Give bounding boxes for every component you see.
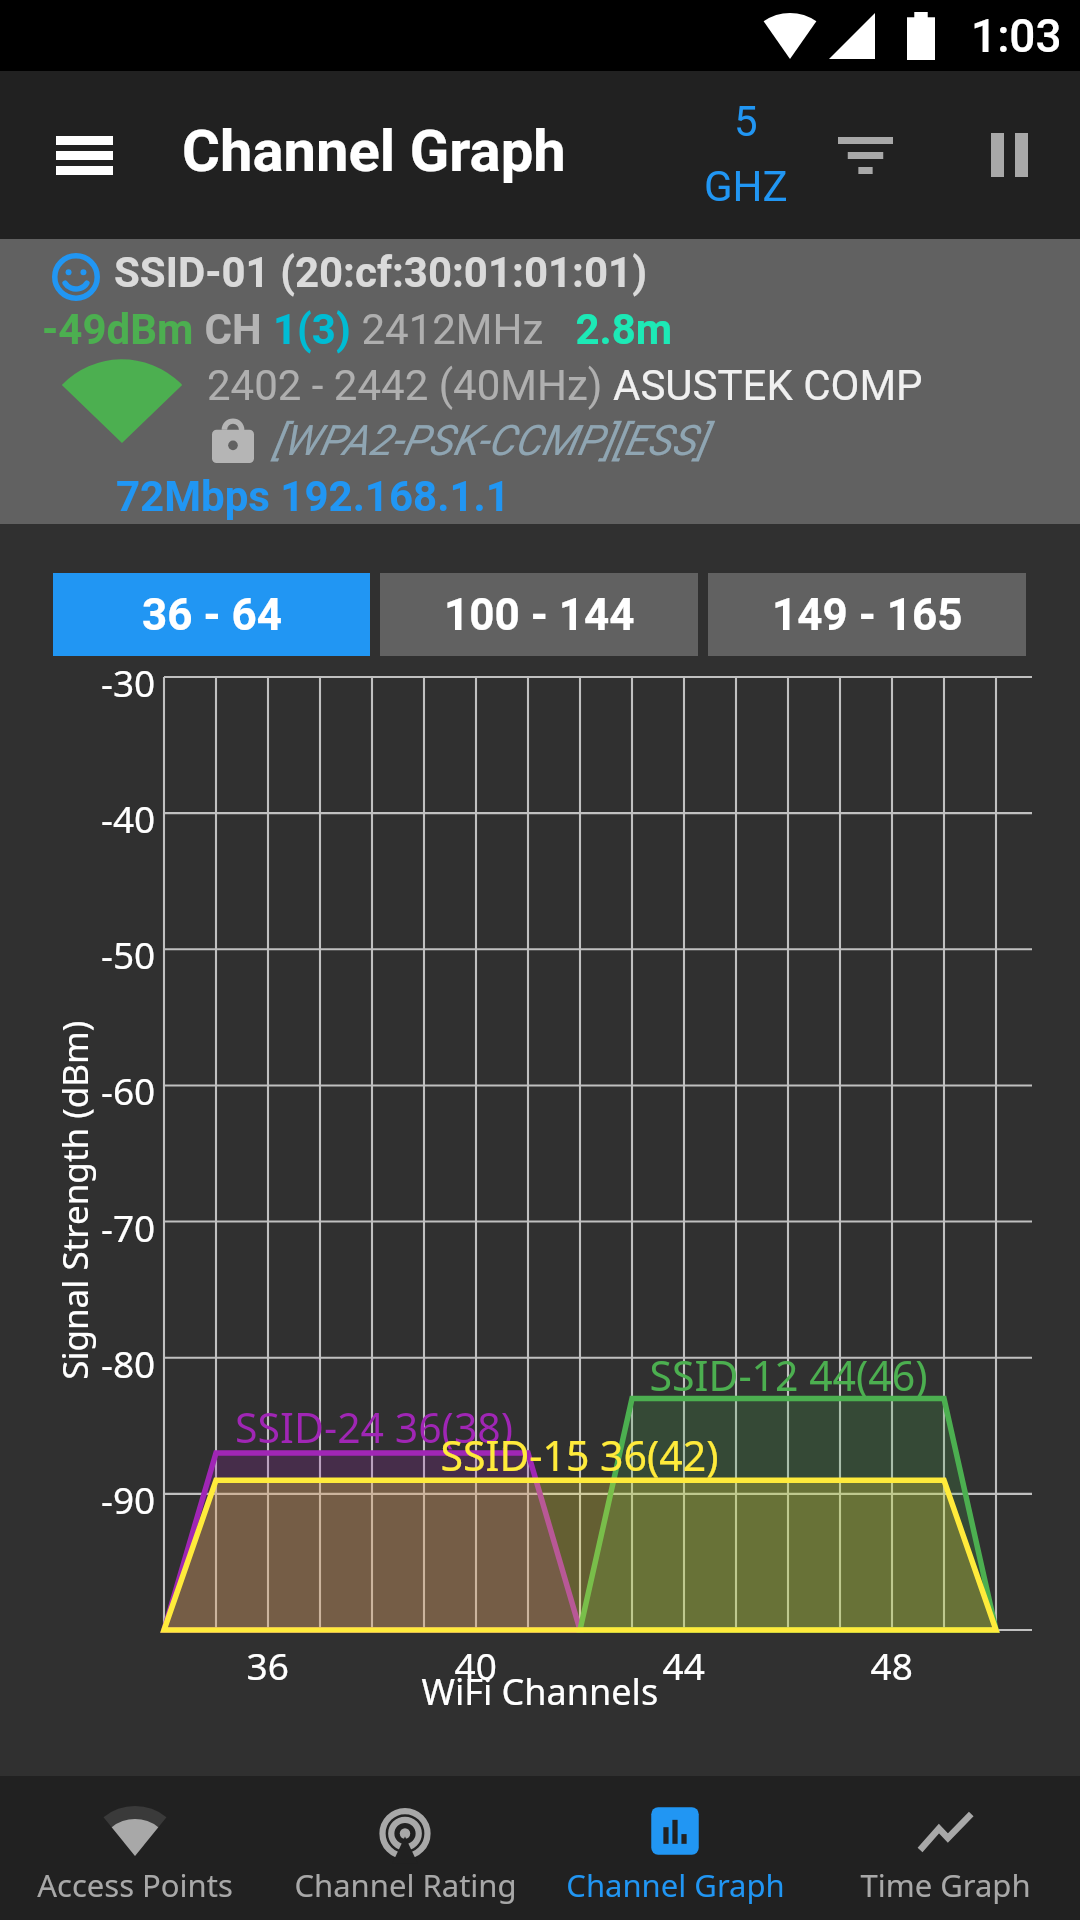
button[interactable]: Access Points [0,1776,270,1920]
staticText: 5 [734,97,758,146]
staticText: Channel Graph [182,117,566,185]
staticText: [WPA2-PSK-CCMP][ESS] [272,416,707,465]
button[interactable]: Pause scanning [954,95,1064,215]
button[interactable]: SSID-01 (20:cf:30:01:01:01) [0,239,1080,524]
button[interactable]: Open navigation drawer [32,100,136,210]
button[interactable]: Filter access points [810,95,920,215]
button[interactable]: 5 [690,87,802,223]
staticText: -49dBm [42,305,194,354]
staticText: 2.8m [544,305,673,354]
button[interactable]: Channel Graph [540,1776,810,1920]
staticText: 36 - 64 [142,589,282,641]
button[interactable]: 149 - 165 [708,573,1026,656]
staticText: Channel Rating [294,1864,517,1906]
staticText: 72Mbps 192.168.1.1 [116,472,510,521]
staticText: ASUSTEK COMP [613,361,923,410]
button[interactable]: Time Graph [810,1776,1080,1920]
button[interactable]: 36 - 64 [53,573,370,656]
staticText: 100 - 144 [444,589,635,641]
staticText: 1(3) [273,305,351,354]
button[interactable]: Channel Rating [270,1776,540,1920]
staticText: CH [194,305,273,354]
staticText: 149 - 165 [772,589,963,641]
button[interactable]: 100 - 144 [380,573,698,656]
staticText: GHZ [704,162,788,211]
staticText: SSID-01 (20:cf:30:01:01:01) [114,248,647,297]
staticText: 2402 - 2442 (40MHz) [207,361,613,410]
staticText: 1:03 [971,9,1062,63]
staticText: 2412MHz [351,305,544,354]
staticText: Time Graph [860,1864,1031,1906]
staticText: Access Points [37,1864,233,1906]
staticText: Channel Graph [566,1864,785,1906]
